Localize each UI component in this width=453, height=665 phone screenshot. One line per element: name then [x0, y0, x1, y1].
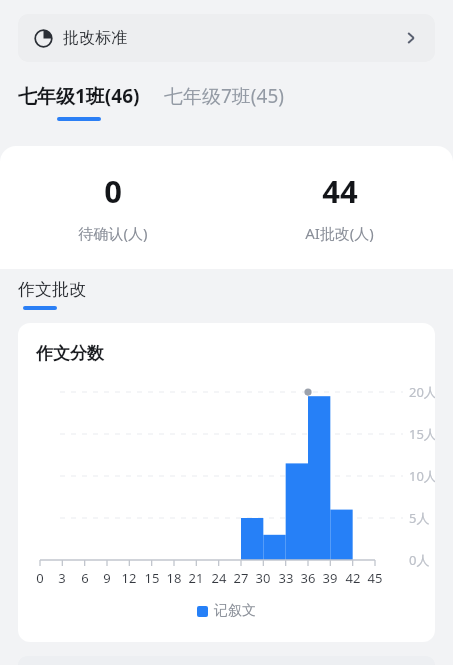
button[interactable]: Grading standard: [18, 14, 435, 62]
staticText: 作文批改: [18, 279, 86, 300]
staticText: 12: [117, 569, 141, 587]
staticText: 10人: [409, 467, 435, 485]
staticText: 42: [341, 569, 365, 587]
staticText: 20人: [409, 383, 435, 401]
button[interactable]: 记叙文: [18, 602, 435, 620]
staticText: 30: [251, 569, 275, 587]
staticText: 18: [162, 569, 186, 587]
staticText: 待确认(人): [78, 223, 148, 243]
staticText: 0人: [409, 551, 430, 569]
other: Grading standard: [34, 29, 53, 48]
staticText: 44: [322, 170, 358, 212]
button[interactable]: 七年级7班(45): [164, 83, 285, 121]
staticText: 0: [28, 569, 52, 587]
staticText: 0: [104, 170, 122, 212]
button[interactable]: 0: [0, 170, 226, 243]
staticText: 24: [207, 569, 231, 587]
staticText: 21: [184, 569, 208, 587]
other: Open grading standard: [401, 28, 421, 48]
staticText: 3: [50, 569, 74, 587]
staticText: 5人: [409, 509, 430, 527]
staticText: 15人: [409, 425, 435, 443]
button[interactable]: 44: [226, 170, 453, 243]
staticText: 七年级7班(45): [164, 83, 285, 109]
staticText: AI批改(人): [305, 223, 374, 243]
staticText: 记叙文: [214, 602, 256, 620]
staticText: 15: [140, 569, 164, 587]
staticText: 33: [274, 569, 298, 587]
staticText: 39: [318, 569, 342, 587]
staticText: 27: [229, 569, 253, 587]
staticText: 36: [296, 569, 320, 587]
staticText: 批改标准: [63, 28, 127, 48]
staticText: 七年级1班(46): [18, 83, 140, 109]
staticText: 作文分数: [36, 343, 104, 364]
staticText: 9: [95, 569, 119, 587]
staticText: 6: [73, 569, 97, 587]
staticText: 45: [363, 569, 387, 587]
button[interactable]: 七年级1班(46): [18, 83, 140, 121]
